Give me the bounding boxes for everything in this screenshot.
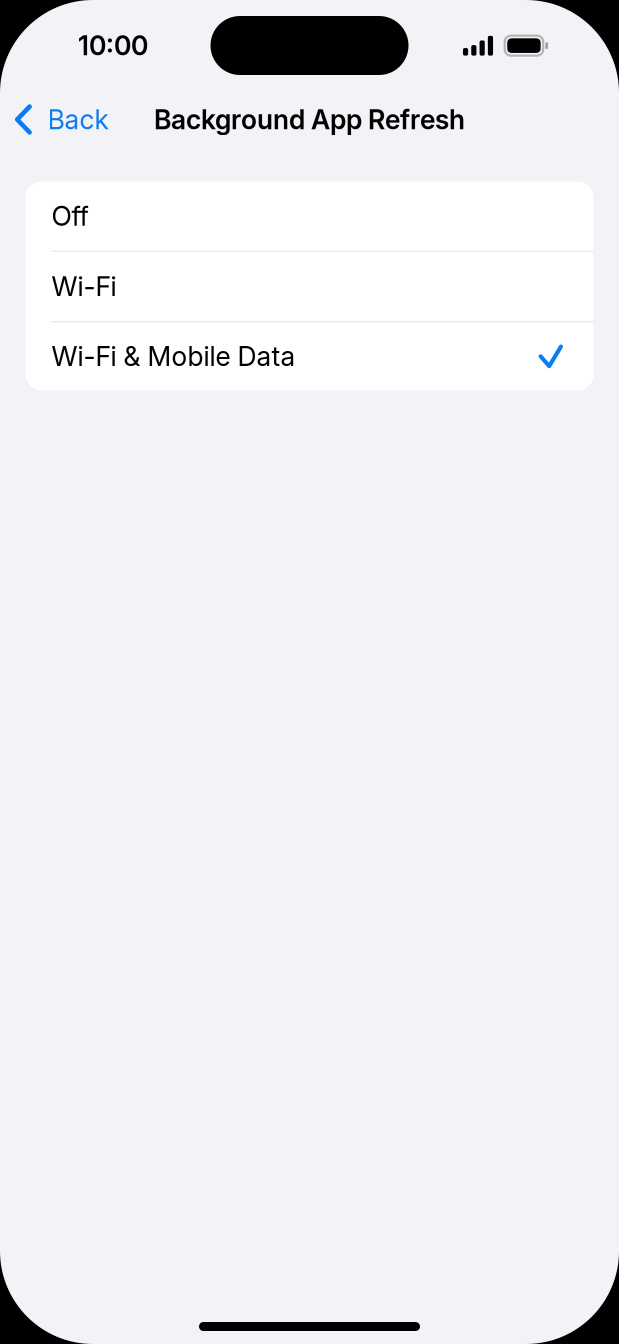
- staticText: Background App Refresh: [154, 103, 465, 136]
- staticText: Wi-Fi: [51, 270, 116, 303]
- button[interactable]: Wi-Fi: [25, 252, 593, 321]
- staticText: Wi-Fi & Mobile Data: [51, 340, 295, 373]
- staticText: Back: [47, 103, 108, 136]
- staticText: Off: [51, 200, 88, 232]
- button[interactable]: Back: [0, 98, 120, 141]
- staticText: 10:00: [78, 29, 148, 62]
- button[interactable]: Wi-Fi & Mobile Data: [25, 322, 593, 390]
- button[interactable]: Off: [25, 181, 593, 251]
